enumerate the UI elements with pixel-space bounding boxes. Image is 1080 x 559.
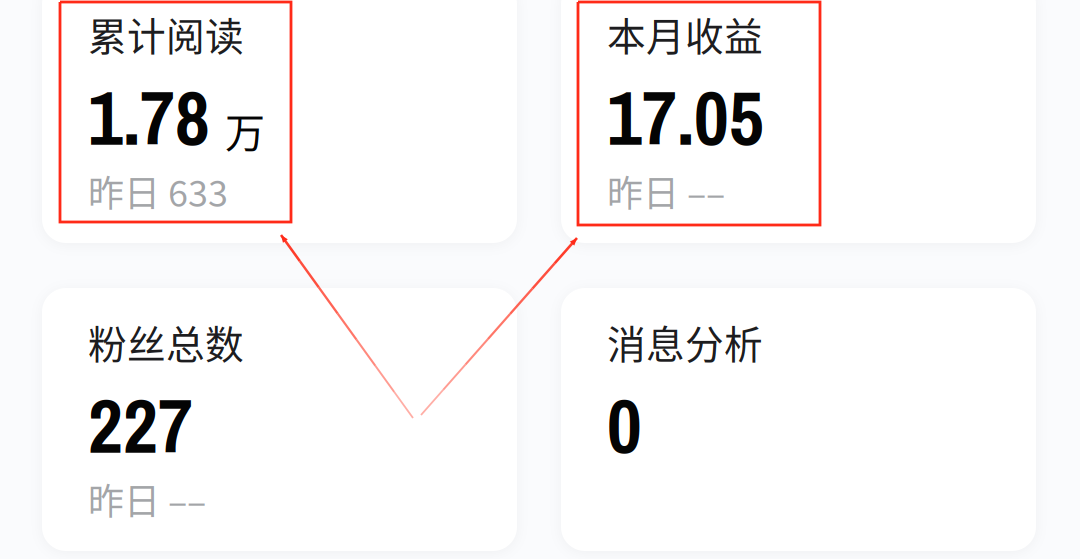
staticText: 消息分析 xyxy=(607,314,763,370)
button[interactable]: 粉丝总数 xyxy=(42,288,517,551)
staticText: 0 xyxy=(607,374,642,476)
button[interactable]: 本月收益 xyxy=(561,0,1036,243)
staticText: 昨日 633 xyxy=(88,165,228,217)
staticText: 227 xyxy=(88,374,193,476)
staticText: 1.78 xyxy=(88,66,210,168)
staticText: 昨日 –– xyxy=(607,165,725,217)
staticText: 本月收益 xyxy=(607,6,763,62)
button[interactable]: 消息分析 xyxy=(561,288,1036,551)
staticText: 累计阅读 xyxy=(88,6,244,62)
staticText: 昨日 –– xyxy=(88,473,206,525)
button[interactable]: 累计阅读 xyxy=(42,0,517,243)
staticText: 万 xyxy=(225,101,265,159)
staticText: 粉丝总数 xyxy=(88,314,244,370)
staticText: 17.05 xyxy=(607,66,764,168)
